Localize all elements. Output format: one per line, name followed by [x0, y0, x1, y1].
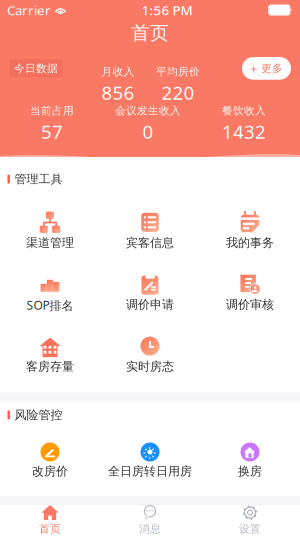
staticText: 月收入: [101, 65, 134, 78]
staticText: 1:56 PM: [141, 1, 192, 19]
staticText: 1432: [222, 119, 266, 144]
staticText: 设置: [239, 522, 261, 536]
button[interactable]: 宾客信息: [100, 211, 200, 273]
button[interactable]: SOP排名: [0, 273, 100, 335]
staticText: 改房价: [32, 464, 68, 479]
staticText: 管理工具: [14, 172, 62, 186]
staticText: +: [250, 59, 258, 77]
staticText: 856: [101, 80, 134, 105]
button[interactable]: +: [242, 57, 291, 80]
staticText: 宾客信息: [126, 235, 174, 250]
staticText: 消息: [139, 522, 161, 536]
staticText: 客房存量: [26, 359, 74, 374]
button[interactable]: 实时房态: [100, 335, 200, 392]
staticText: 首页: [39, 522, 61, 536]
staticText: 首页: [131, 21, 169, 44]
button[interactable]: 设置: [200, 504, 300, 540]
staticText: SOP排名: [26, 297, 73, 313]
staticText: 换房: [238, 464, 262, 479]
staticText: 平均房价: [156, 65, 200, 78]
button[interactable]: 客房存量: [0, 335, 100, 392]
button[interactable]: 调价申请: [100, 273, 200, 335]
staticText: 调价审核: [226, 297, 274, 312]
staticText: 更多: [261, 62, 283, 75]
button[interactable]: 全日房转日用房: [100, 442, 200, 496]
staticText: 220: [161, 80, 194, 105]
staticText: 调价申请: [126, 297, 174, 312]
button[interactable]: 换房: [200, 442, 300, 496]
staticText: 当前占用: [30, 104, 74, 117]
button[interactable]: 首页: [0, 504, 100, 540]
staticText: 实时房态: [126, 359, 174, 374]
staticText: 餐饮收入: [222, 104, 266, 117]
button[interactable]: 我的事务: [200, 211, 300, 273]
staticText: Carrier: [7, 1, 51, 19]
staticText: 今日数据: [14, 62, 58, 75]
staticText: 风险管控: [14, 408, 62, 422]
staticText: 我的事务: [226, 235, 274, 250]
button[interactable]: 调价审核: [200, 273, 300, 335]
button[interactable]: 消息: [100, 504, 200, 540]
staticText: 0: [142, 119, 153, 144]
staticText: 57: [41, 119, 63, 144]
staticText: 会议发生收入: [115, 104, 181, 117]
button[interactable]: 渠道管理: [0, 211, 100, 273]
staticText: 全日房转日用房: [108, 464, 192, 479]
staticText: 渠道管理: [26, 235, 74, 250]
button[interactable]: 改房价: [0, 442, 100, 496]
